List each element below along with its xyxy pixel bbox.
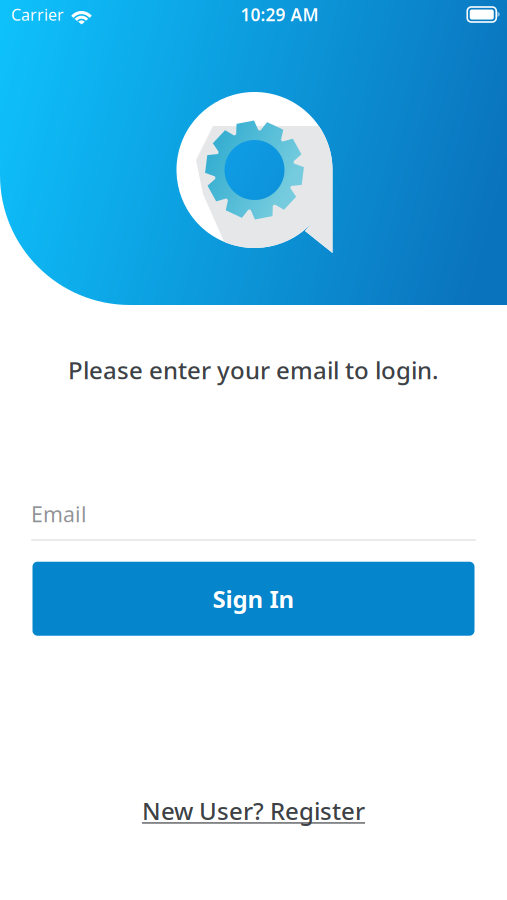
staticText: Carrier	[11, 4, 64, 25]
staticText: 10:29 AM	[240, 3, 318, 26]
staticText: New User? Register	[142, 795, 365, 827]
staticText: Please enter your email to login.	[68, 354, 439, 386]
button[interactable]: New User? Register	[142, 795, 365, 827]
button[interactable]: Sign In	[32, 562, 474, 636]
staticText: Sign In	[212, 583, 294, 615]
staticText: Email	[31, 500, 87, 528]
